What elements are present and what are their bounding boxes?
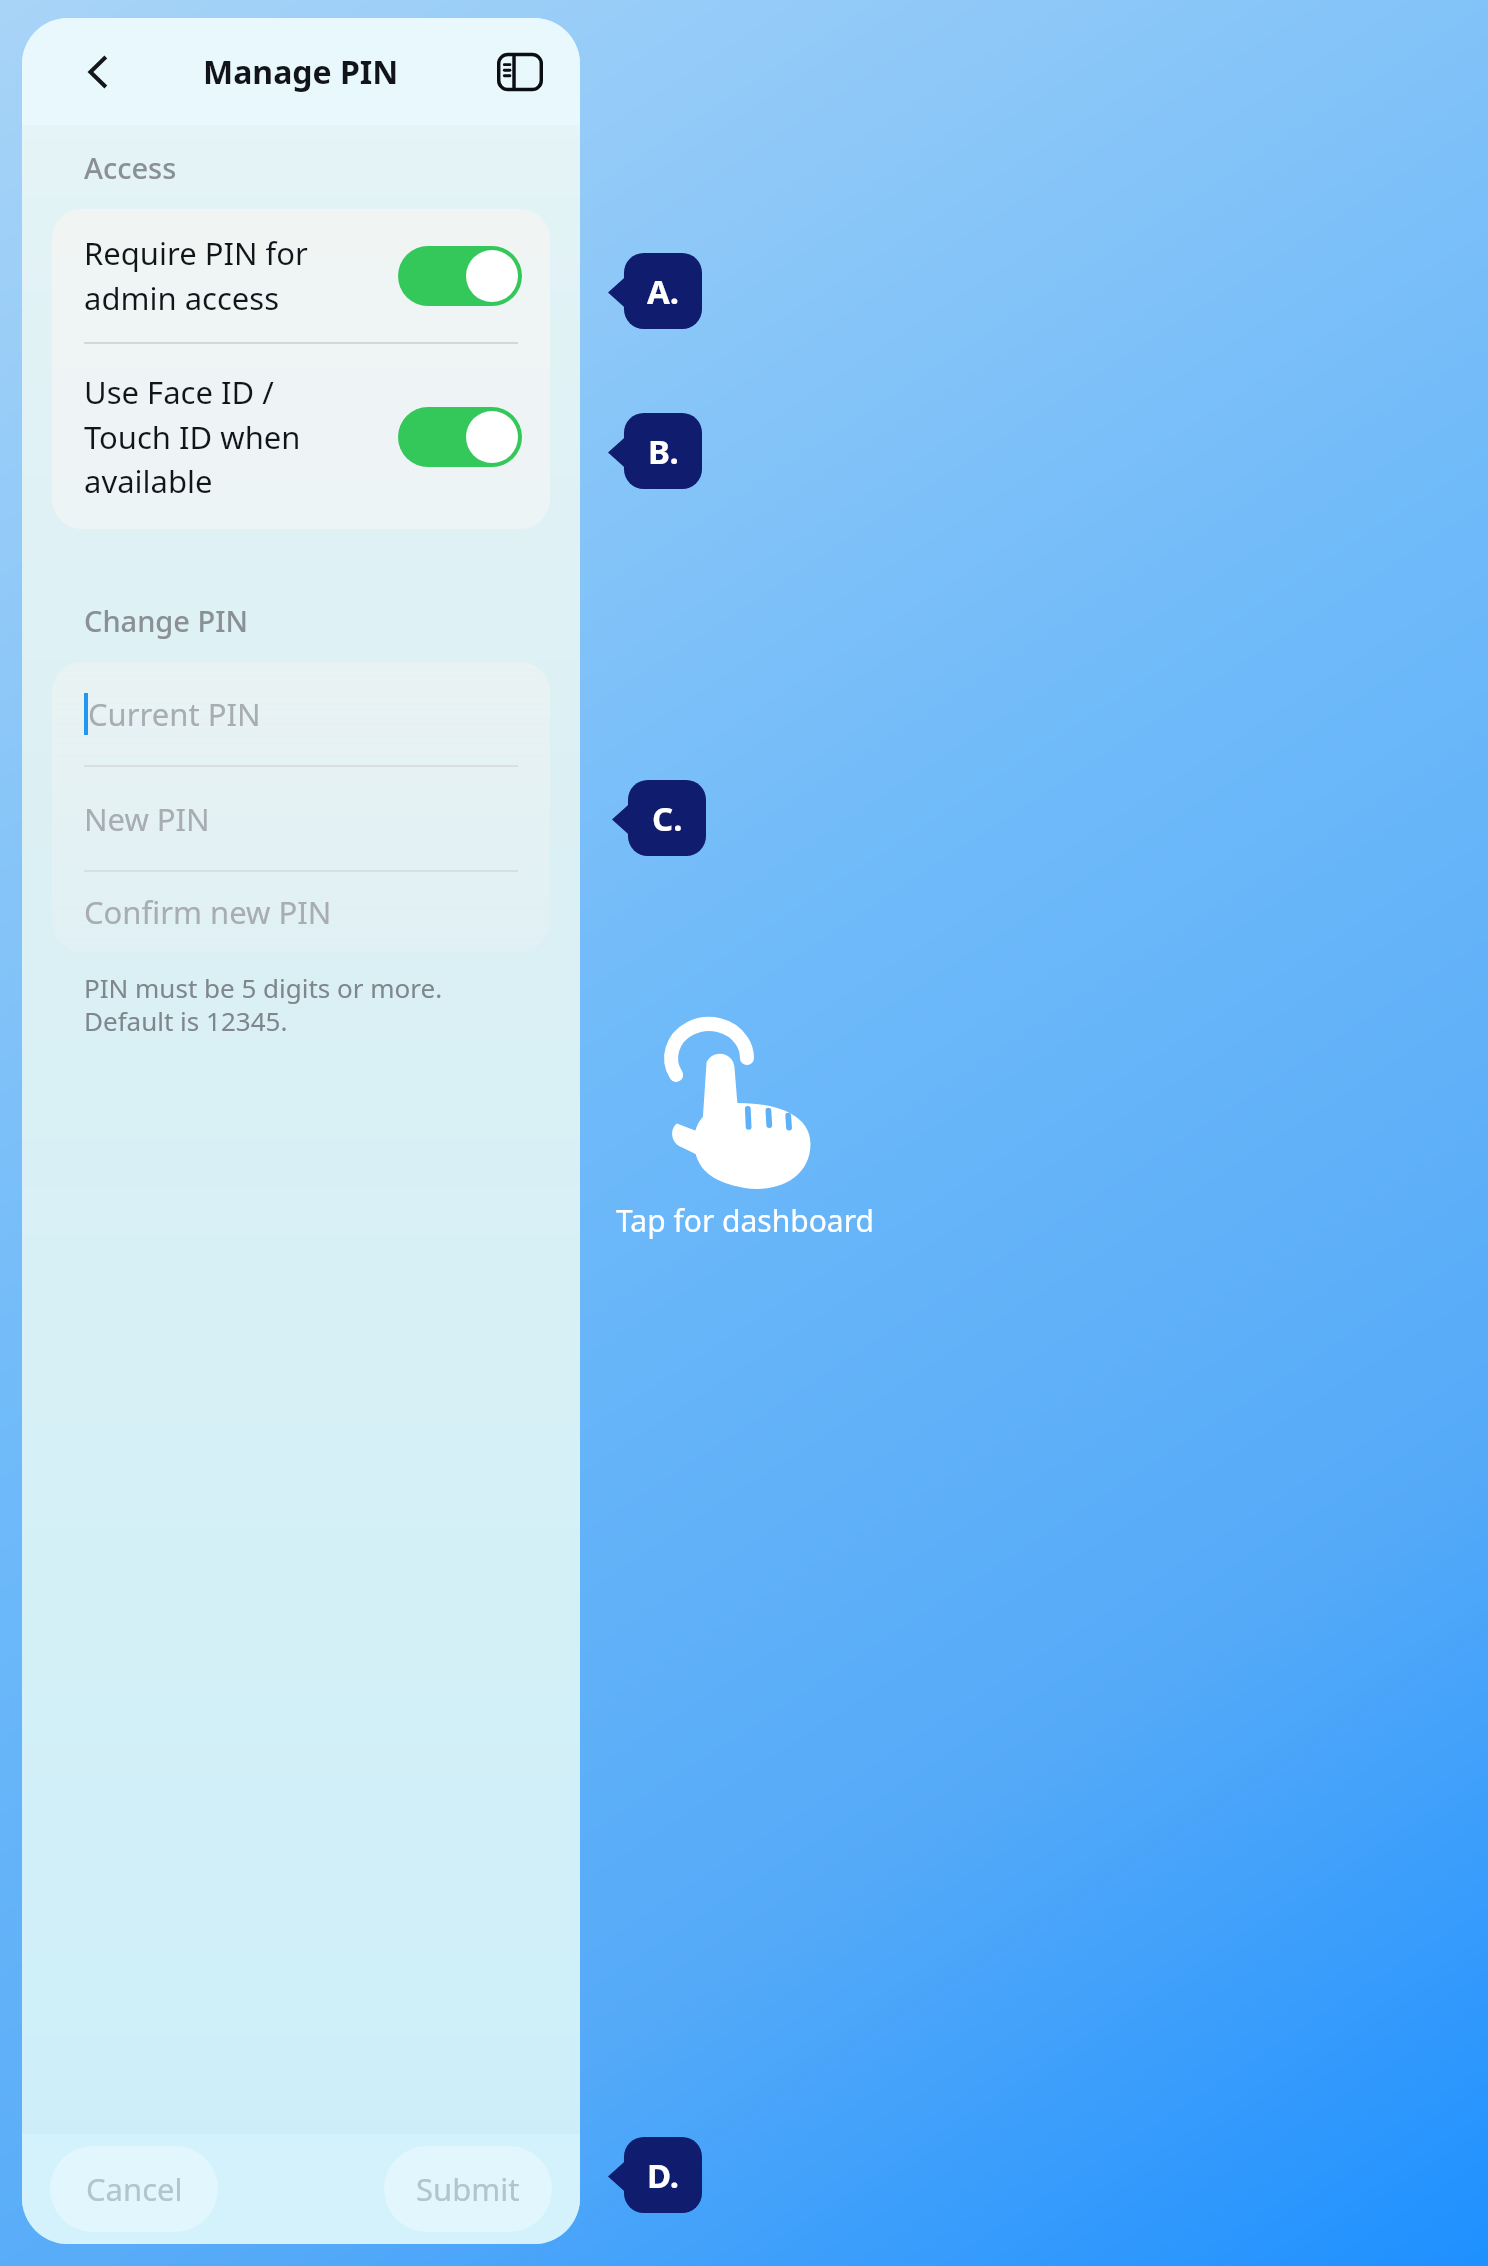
staticText: Current PIN (88, 693, 261, 735)
staticText: New PIN (84, 798, 210, 840)
staticText: PIN must be 5 digits or more. Default is… (84, 970, 443, 1039)
staticText: A. (647, 269, 680, 314)
staticText: C. (652, 796, 683, 841)
staticText: Tap for dashboard (560, 1200, 930, 1241)
staticText: Confirm new PIN (84, 891, 332, 933)
button[interactable]: New PIN (52, 767, 550, 870)
button[interactable]: Require PIN for admin access (52, 209, 550, 342)
button[interactable]: Toggle, on (398, 246, 522, 306)
button[interactable]: Submit (384, 2146, 552, 2232)
staticText: Cancel (86, 2168, 183, 2210)
staticText: Manage PIN (203, 50, 399, 94)
button[interactable]: Confirm new PIN (52, 872, 550, 952)
staticText: Use Face ID / Touch ID when available (84, 371, 398, 502)
button[interactable]: Cancel (50, 2146, 218, 2232)
staticText: Change PIN (84, 601, 248, 640)
staticText: D. (647, 2153, 680, 2198)
staticText: Submit (416, 2168, 520, 2210)
staticText: Require PIN for admin access (84, 232, 398, 319)
staticText: Access (84, 148, 177, 187)
button[interactable]: Use Face ID / Touch ID when available (52, 344, 550, 529)
button[interactable]: Current PIN (52, 662, 550, 765)
button[interactable]: Tap for dashboard (600, 1008, 888, 1268)
staticText: B. (648, 429, 679, 474)
button[interactable]: Back (70, 44, 126, 100)
button[interactable]: Toggle sidebar (488, 40, 552, 104)
button[interactable]: Toggle, on (398, 407, 522, 467)
